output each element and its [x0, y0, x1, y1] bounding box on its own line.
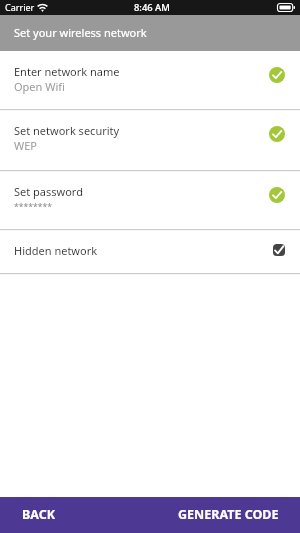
staticText: Carrier: [5, 1, 35, 13]
staticText: ********: [14, 201, 52, 213]
button[interactable]: Set password: [0, 171, 300, 230]
staticText: Hidden network: [14, 243, 98, 258]
staticText: Enter network name: [14, 64, 120, 79]
staticText: 8:46 AM: [134, 1, 170, 14]
button[interactable]: BACK: [0, 497, 70, 533]
button[interactable]: GENERATE CODE: [164, 497, 300, 533]
staticText: Set your wireless network: [14, 25, 147, 40]
button[interactable]: Hidden network: [0, 230, 300, 274]
staticText: GENERATE CODE: [178, 506, 279, 522]
other: Hidden network checkbox: [273, 244, 285, 256]
staticText: Set network security: [14, 123, 120, 138]
button[interactable]: Set network security: [0, 110, 300, 171]
staticText: Set password: [14, 184, 83, 199]
staticText: WEP: [14, 138, 38, 153]
staticText: Open Wifi: [14, 79, 65, 94]
button[interactable]: Enter network name: [0, 51, 300, 110]
staticText: BACK: [22, 506, 56, 522]
